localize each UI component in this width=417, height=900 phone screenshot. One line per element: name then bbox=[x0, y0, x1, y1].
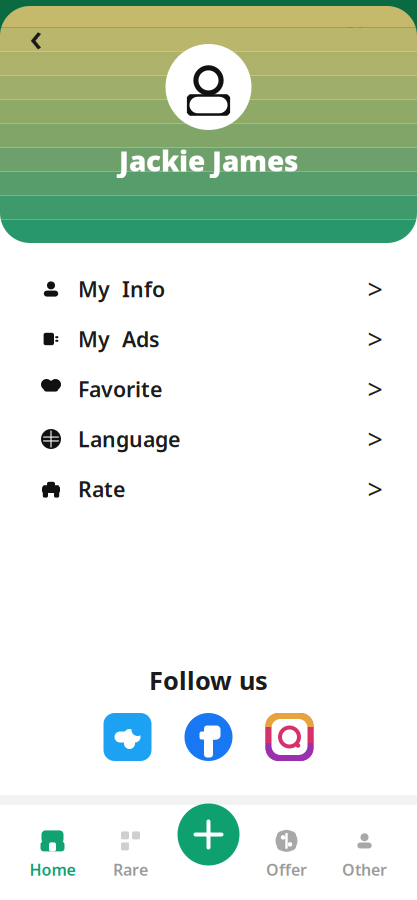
staticText: Rate bbox=[78, 475, 125, 503]
staticText: > bbox=[367, 471, 382, 507]
button[interactable]: Instagram bbox=[265, 713, 313, 761]
button[interactable]: Rare bbox=[91, 823, 169, 885]
staticText: > bbox=[367, 371, 382, 407]
button[interactable]: Home bbox=[13, 823, 91, 885]
button[interactable]: Facebook bbox=[184, 713, 232, 761]
staticText: Follow us bbox=[149, 663, 268, 697]
button[interactable]: Other bbox=[325, 823, 403, 885]
staticText: Rare bbox=[113, 859, 148, 880]
button[interactable]: My Ads bbox=[0, 314, 417, 364]
staticText: Jackie James bbox=[119, 142, 298, 179]
staticText: Offer bbox=[266, 859, 307, 880]
button[interactable]: Rate bbox=[0, 464, 417, 514]
button[interactable]: Back bbox=[14, 14, 58, 58]
button[interactable]: Add bbox=[175, 801, 241, 867]
staticText: Favorite bbox=[78, 375, 162, 403]
staticText: My Ads bbox=[78, 325, 160, 353]
button[interactable]: Favorite bbox=[0, 364, 417, 414]
staticText: Other bbox=[342, 859, 387, 880]
button[interactable]: My Info bbox=[0, 264, 417, 314]
staticText: My Info bbox=[78, 275, 165, 303]
button[interactable]: Offer bbox=[247, 823, 325, 885]
staticText: Language bbox=[78, 425, 180, 453]
staticText: > bbox=[367, 271, 382, 307]
staticText: Home bbox=[29, 859, 75, 880]
staticText: > bbox=[367, 321, 382, 357]
button[interactable]: Language bbox=[0, 414, 417, 464]
staticText: > bbox=[367, 421, 382, 457]
staticText: 9:41 bbox=[22, 4, 64, 32]
staticText: ‹ bbox=[29, 9, 42, 62]
button[interactable]: Twitter bbox=[103, 713, 151, 761]
